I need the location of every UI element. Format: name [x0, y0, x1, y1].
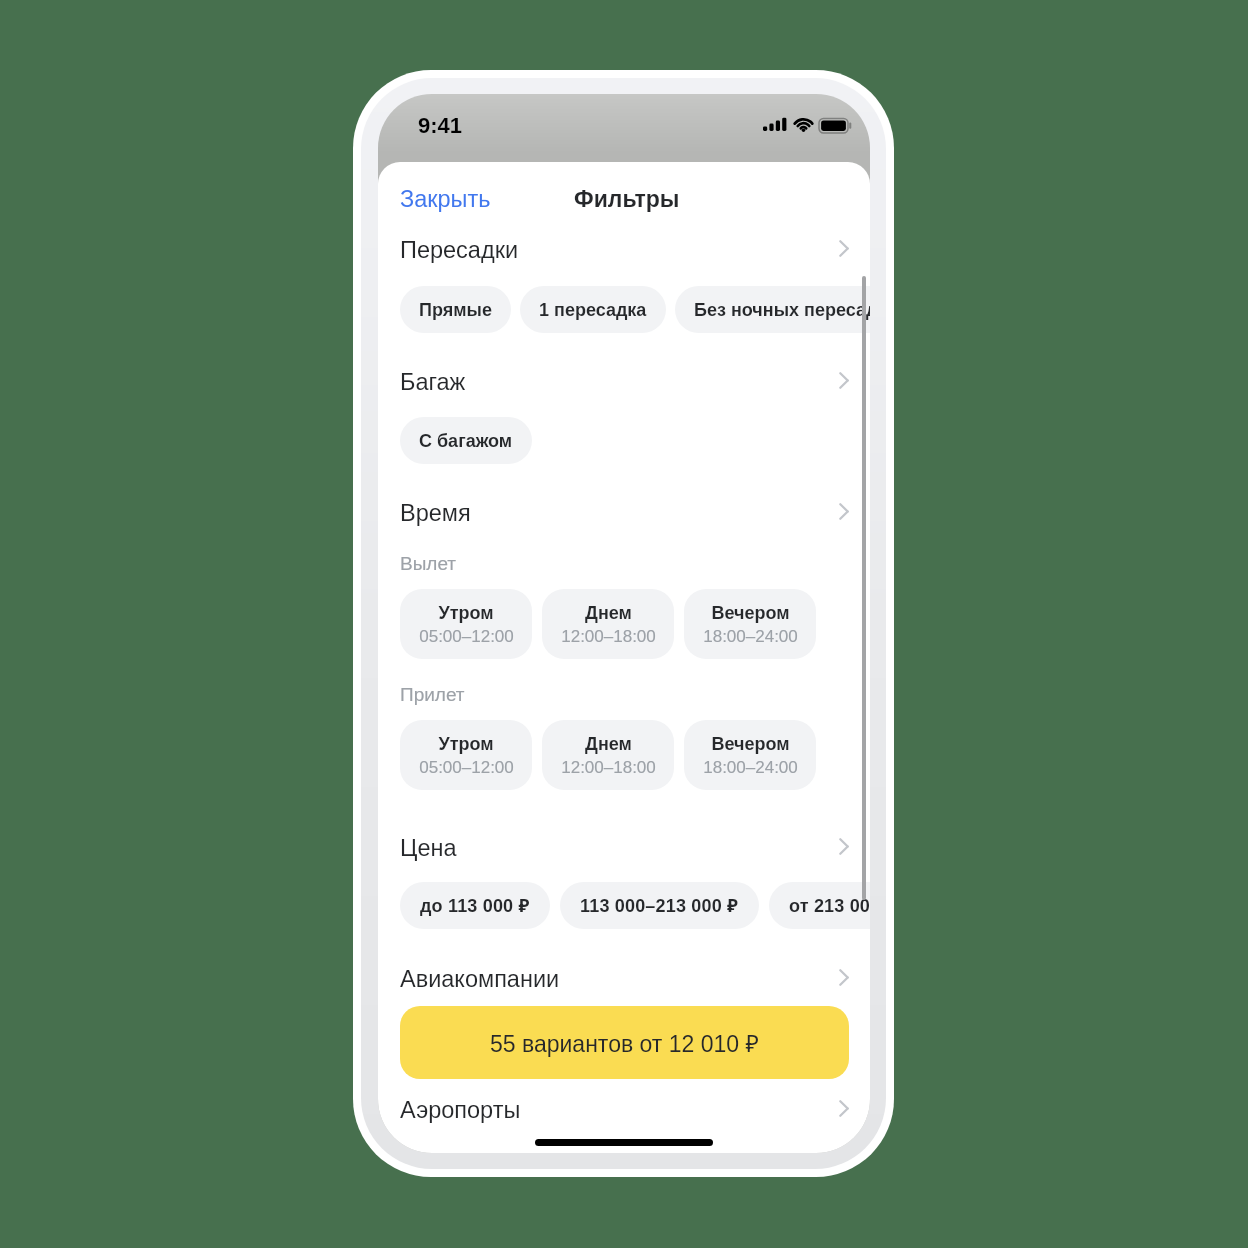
- button[interactable]: Прямые: [400, 286, 511, 333]
- staticText: 12:00–18:00: [561, 627, 656, 646]
- staticText: Вылет: [400, 553, 457, 574]
- staticText: Вечером: [711, 603, 790, 623]
- staticText: Вечером: [711, 734, 790, 754]
- button[interactable]: Авиакомпании: [378, 959, 870, 999]
- staticText: 113 000–213 000 ₽: [580, 893, 739, 918]
- button[interactable]: Аэропорты: [378, 1090, 870, 1130]
- button[interactable]: 113 000–213 000 ₽: [560, 882, 759, 929]
- button[interactable]: Вечером: [684, 589, 816, 659]
- button[interactable]: Днем: [542, 589, 674, 659]
- staticText: Утром: [438, 603, 494, 623]
- staticText: 05:00–12:00: [419, 627, 514, 646]
- button[interactable]: 55 вариантов от 12 010 ₽: [400, 1006, 849, 1079]
- button[interactable]: Вечером: [684, 720, 816, 790]
- staticText: Фильтры: [574, 186, 680, 212]
- staticText: 55 вариантов от 12 010 ₽: [490, 1027, 759, 1058]
- staticText: 18:00–24:00: [703, 758, 798, 777]
- staticText: Прилет: [400, 684, 465, 705]
- button[interactable]: Цена: [378, 828, 870, 868]
- staticText: 12:00–18:00: [561, 758, 656, 777]
- staticText: С багажом: [419, 431, 513, 451]
- button[interactable]: Днем: [542, 720, 674, 790]
- other: Signal, Wi-Fi and battery status: [763, 112, 858, 138]
- staticText: от 213 000 ₽: [789, 893, 870, 918]
- button[interactable]: Утром: [400, 589, 532, 659]
- button[interactable]: Без ночных пересадок: [675, 286, 870, 333]
- staticText: Прямые: [419, 300, 492, 320]
- button[interactable]: Закрыть: [392, 178, 499, 220]
- staticText: до 113 000 ₽: [420, 893, 530, 918]
- button[interactable]: Пересадки: [378, 230, 870, 270]
- staticText: Авиакомпании: [400, 966, 560, 992]
- button[interactable]: Время: [378, 493, 870, 533]
- staticText: Без ночных пересадок: [694, 300, 870, 320]
- staticText: Днем: [585, 734, 632, 754]
- button[interactable]: 1 пересадка: [520, 286, 666, 333]
- staticText: 05:00–12:00: [419, 758, 514, 777]
- staticText: Днем: [585, 603, 632, 623]
- staticText: Закрыть: [400, 186, 491, 212]
- button[interactable]: Багаж: [378, 362, 870, 402]
- staticText: 18:00–24:00: [703, 627, 798, 646]
- button[interactable]: от 213 000 ₽: [769, 882, 870, 929]
- button[interactable]: до 113 000 ₽: [400, 882, 550, 929]
- staticText: Время: [400, 500, 471, 526]
- staticText: Багаж: [400, 369, 466, 395]
- button[interactable]: С багажом: [400, 417, 532, 464]
- staticText: Утром: [438, 734, 494, 754]
- staticText: 9:41: [418, 113, 463, 138]
- button[interactable]: Утром: [400, 720, 532, 790]
- staticText: Аэропорты: [400, 1097, 521, 1123]
- staticText: 1 пересадка: [539, 300, 647, 320]
- staticText: Пересадки: [400, 237, 519, 263]
- staticText: Цена: [400, 835, 457, 861]
